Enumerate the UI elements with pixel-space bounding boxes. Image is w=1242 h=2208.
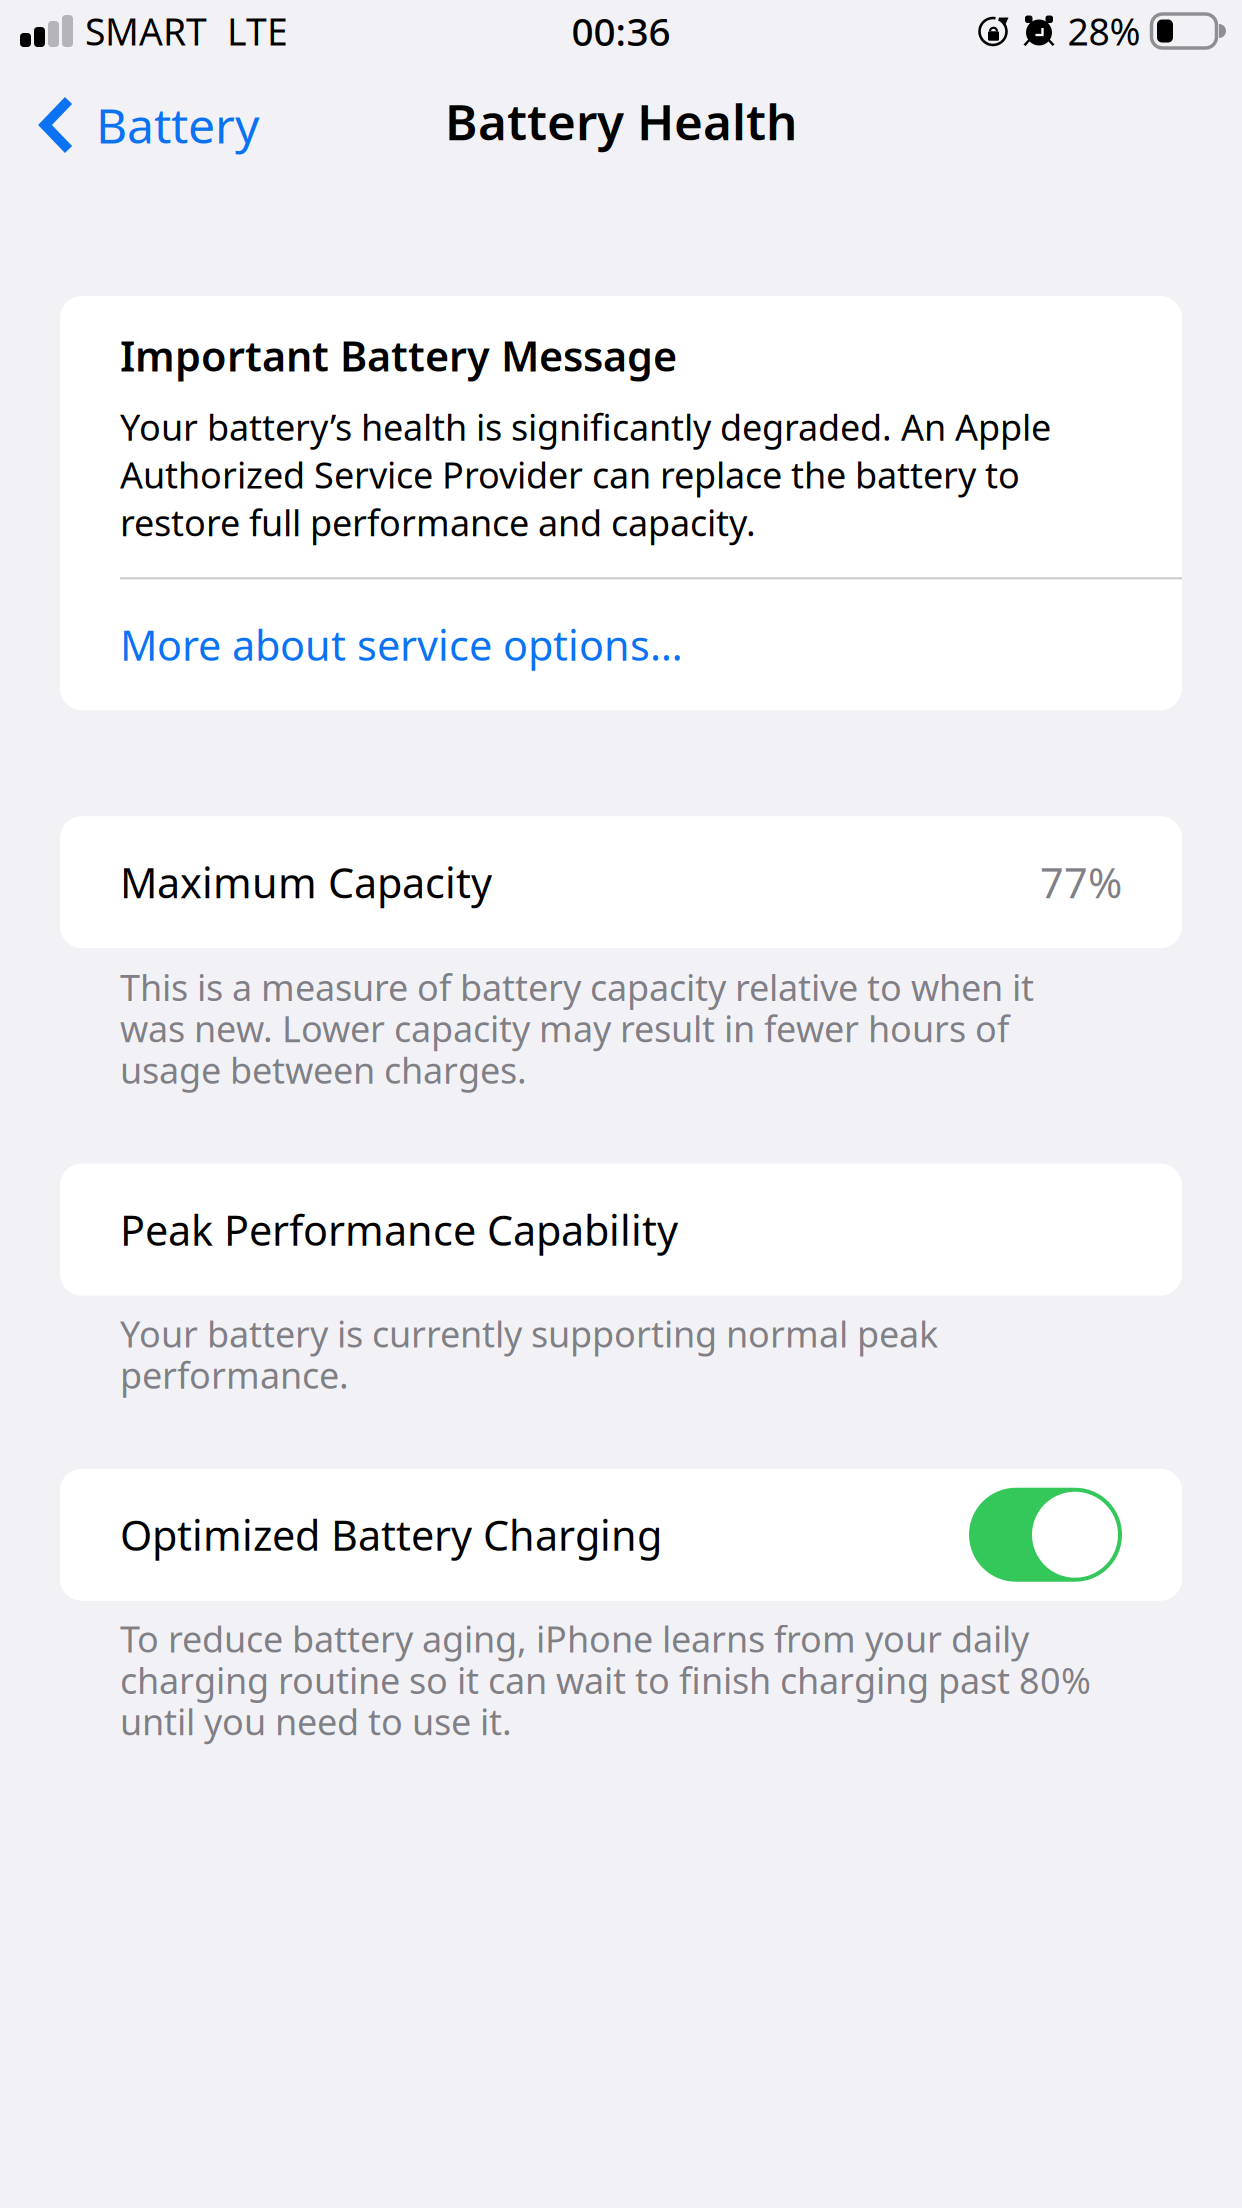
staticText: Important Battery Message (120, 328, 677, 383)
staticText: This is a measure of battery capacity re… (120, 963, 1034, 1094)
staticText: 00:36 (571, 5, 670, 57)
button[interactable]: Optimized Battery Charging, on (969, 1488, 1122, 1582)
button[interactable]: Peak Performance Capability (60, 1164, 1182, 1296)
staticText: Battery (96, 93, 259, 157)
staticText: More about service options… (120, 617, 683, 672)
staticText: Maximum Capacity (120, 855, 492, 910)
button[interactable]: Battery (39, 77, 277, 165)
staticText: Peak Performance Capability (120, 1202, 678, 1257)
staticText: Optimized Battery Charging (120, 1507, 662, 1562)
staticText: Battery Health (445, 88, 797, 154)
button[interactable]: Maximum Capacity (60, 816, 1182, 948)
staticText: Your battery’s health is significantly d… (120, 403, 1051, 546)
staticText: 28% (1067, 6, 1140, 56)
button[interactable]: Optimized Battery Charging (60, 1469, 1182, 1601)
button[interactable]: More about service options… (60, 579, 1182, 710)
staticText: SMART LTE (85, 6, 288, 56)
staticText: 77% (1040, 855, 1122, 910)
staticText: To reduce battery aging, iPhone learns f… (120, 1615, 1091, 1745)
staticText: Your battery is currently supporting nor… (120, 1310, 938, 1399)
